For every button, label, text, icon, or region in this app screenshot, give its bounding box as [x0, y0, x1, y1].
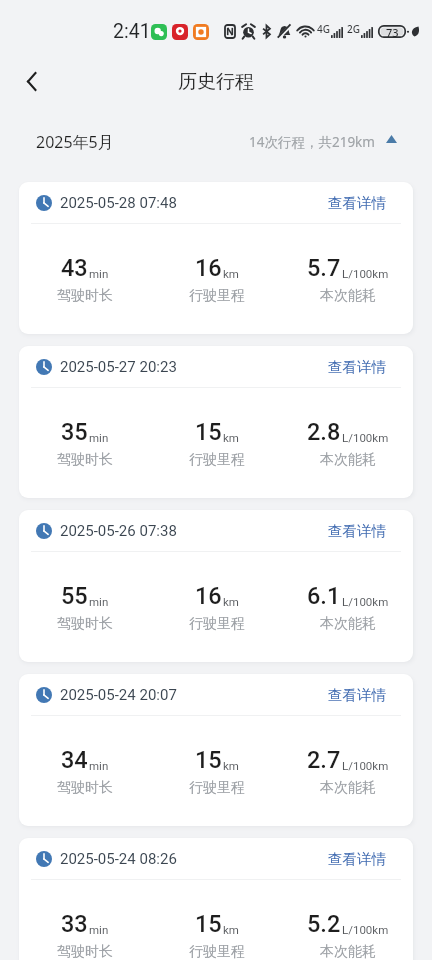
staticText: 行驶里程: [189, 779, 245, 797]
staticText: 查看详情: [328, 686, 386, 704]
staticText: 驾驶时长: [57, 287, 113, 305]
button[interactable]: 2025-05-24 20:07: [19, 674, 413, 826]
staticText: km: [223, 595, 239, 608]
staticText: 15: [195, 910, 222, 938]
staticText: L/100km: [342, 431, 389, 444]
staticText: 查看详情: [328, 358, 386, 376]
button[interactable]: 查看详情: [328, 522, 386, 540]
staticText: 查看详情: [328, 194, 386, 212]
staticText: min: [89, 431, 109, 444]
button[interactable]: 2025-05-26 07:38: [19, 510, 413, 662]
staticText: 2025-05-28 07:48: [60, 194, 177, 212]
staticText: 本次能耗: [320, 943, 376, 960]
staticText: 行驶里程: [189, 943, 245, 960]
staticText: 驾驶时长: [57, 943, 113, 960]
staticText: 5.2: [307, 910, 341, 938]
staticText: 查看详情: [328, 850, 386, 868]
staticText: L/100km: [342, 267, 389, 280]
staticText: 2.7: [307, 746, 341, 774]
button[interactable]: 2025-05-28 07:48: [19, 182, 413, 334]
button[interactable]: Back: [10, 63, 54, 100]
staticText: min: [89, 759, 109, 772]
staticText: 行驶里程: [189, 287, 245, 305]
staticText: 行驶里程: [189, 451, 245, 469]
staticText: 14次行程，共219km: [249, 133, 375, 151]
staticText: min: [89, 267, 109, 280]
staticText: 16: [195, 254, 222, 282]
staticText: L/100km: [342, 759, 389, 772]
staticText: L/100km: [342, 923, 389, 936]
staticText: 驾驶时长: [57, 615, 113, 633]
staticText: 本次能耗: [320, 779, 376, 797]
staticText: min: [89, 923, 109, 936]
button[interactable]: 查看详情: [328, 194, 386, 212]
staticText: 查看详情: [328, 522, 386, 540]
staticText: 2.8: [307, 418, 341, 446]
staticText: km: [223, 267, 239, 280]
staticText: 历史行程: [178, 70, 254, 94]
staticText: 55: [61, 582, 88, 610]
staticText: min: [89, 595, 109, 608]
staticText: 15: [195, 418, 222, 446]
staticText: km: [223, 759, 239, 772]
staticText: 4G: [317, 22, 330, 36]
staticText: 34: [61, 746, 88, 774]
staticText: L/100km: [342, 595, 389, 608]
staticText: 驾驶时长: [57, 451, 113, 469]
staticText: 6.1: [307, 582, 341, 610]
button[interactable]: 查看详情: [328, 358, 386, 376]
staticText: 33: [61, 910, 88, 938]
staticText: 35: [61, 418, 88, 446]
staticText: 2:41: [113, 20, 151, 43]
staticText: 73: [386, 25, 399, 38]
staticText: km: [223, 923, 239, 936]
button[interactable]: 14次行程，共219km: [249, 133, 397, 151]
staticText: 43: [61, 254, 88, 282]
staticText: 2025年5月: [36, 131, 114, 153]
staticText: 驾驶时长: [57, 779, 113, 797]
staticText: km: [223, 431, 239, 444]
staticText: 本次能耗: [320, 451, 376, 469]
staticText: 本次能耗: [320, 287, 376, 305]
button[interactable]: 2025-05-27 20:23: [19, 346, 413, 498]
button[interactable]: 2025-05-24 08:26: [19, 838, 413, 960]
staticText: 15: [195, 746, 222, 774]
staticText: 2025-05-27 20:23: [60, 358, 177, 376]
staticText: 2025-05-24 20:07: [60, 686, 177, 704]
staticText: 2025-05-26 07:38: [60, 522, 177, 540]
staticText: 行驶里程: [189, 615, 245, 633]
staticText: 2025-05-24 08:26: [60, 850, 177, 868]
staticText: 本次能耗: [320, 615, 376, 633]
button[interactable]: 查看详情: [328, 850, 386, 868]
staticText: 16: [195, 582, 222, 610]
staticText: 2G: [347, 22, 360, 36]
button[interactable]: 查看详情: [328, 686, 386, 704]
staticText: 5.7: [307, 254, 341, 282]
